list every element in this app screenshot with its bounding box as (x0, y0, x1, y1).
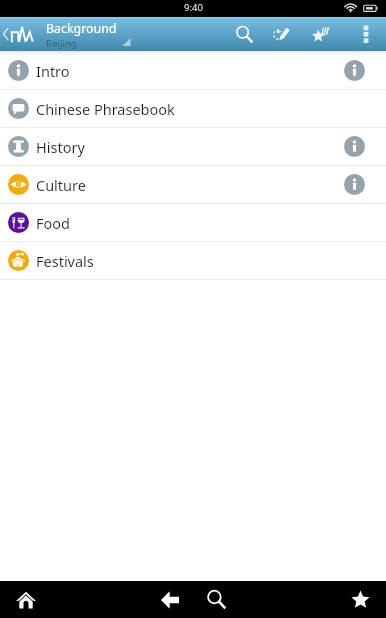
button[interactable]: More options (340, 17, 386, 51)
staticText: Culture (36, 175, 86, 195)
button[interactable]: Search (226, 17, 262, 51)
button[interactable]: History (0, 128, 386, 165)
button[interactable]: Festivals (0, 242, 386, 279)
button[interactable]: Chinese Phrasebook (0, 90, 386, 127)
button[interactable]: Home (4, 581, 48, 618)
button[interactable]: Back (148, 581, 192, 618)
staticText: Background (46, 20, 117, 37)
button[interactable]: Plan a trip (262, 17, 300, 51)
button[interactable]: Search (194, 581, 238, 618)
staticText: Chinese Phrasebook (36, 99, 175, 119)
staticText: Intro (36, 61, 70, 81)
button[interactable]: Culture (0, 166, 386, 203)
button[interactable]: Food (0, 204, 386, 241)
staticText: Food (36, 213, 70, 233)
button[interactable]: Bookmarks (300, 17, 340, 51)
staticText: 9:40 (184, 1, 203, 14)
button[interactable]: Bookmarks (338, 581, 382, 618)
staticText: Festivals (36, 251, 94, 271)
button[interactable]: Up, Beijing (0, 17, 133, 51)
staticText: Beijing (46, 37, 77, 50)
button[interactable]: Intro (0, 52, 386, 89)
staticText: History (36, 137, 85, 157)
